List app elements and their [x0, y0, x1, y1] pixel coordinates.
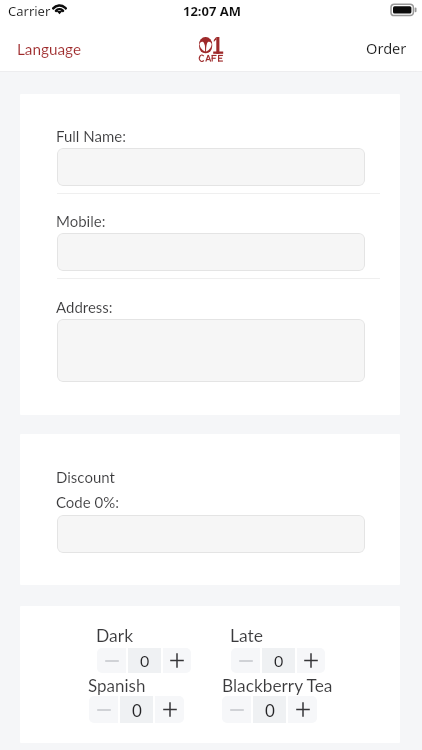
button[interactable]: Increase [155, 696, 184, 723]
staticText: 12:07 AM [183, 2, 242, 20]
button[interactable]: Decrease [89, 696, 118, 723]
staticText: Discount [56, 468, 115, 486]
staticText: 0 [132, 700, 142, 720]
staticText: Mobile: [56, 212, 106, 230]
staticText: Full Name: [56, 127, 126, 145]
staticText: Order [366, 38, 407, 58]
staticText: Address: [56, 298, 113, 316]
staticText: 0 [274, 651, 284, 670]
staticText: Blackberry Tea [222, 675, 333, 696]
staticText: Carrier [8, 2, 51, 20]
staticText: Spanish [88, 675, 146, 695]
button[interactable]: Decrease [222, 696, 251, 723]
button[interactable]: Language [17, 40, 81, 58]
staticText: 0 [140, 651, 150, 670]
button[interactable] [57, 233, 365, 271]
staticText: Code 0%: [56, 493, 120, 511]
staticText: Language [17, 40, 81, 58]
button[interactable]: Increase [163, 648, 191, 673]
button[interactable]: Decrease [97, 648, 126, 673]
staticText: Dark [96, 625, 134, 646]
button[interactable] [57, 319, 365, 382]
button[interactable] [57, 148, 365, 186]
button[interactable]: Increase [288, 696, 317, 723]
button[interactable] [57, 515, 365, 553]
button[interactable]: Order [366, 38, 407, 58]
button[interactable]: Increase [297, 648, 325, 673]
staticText: 0 [265, 700, 275, 720]
button[interactable]: Decrease [231, 648, 260, 673]
staticText: Late [230, 625, 264, 646]
